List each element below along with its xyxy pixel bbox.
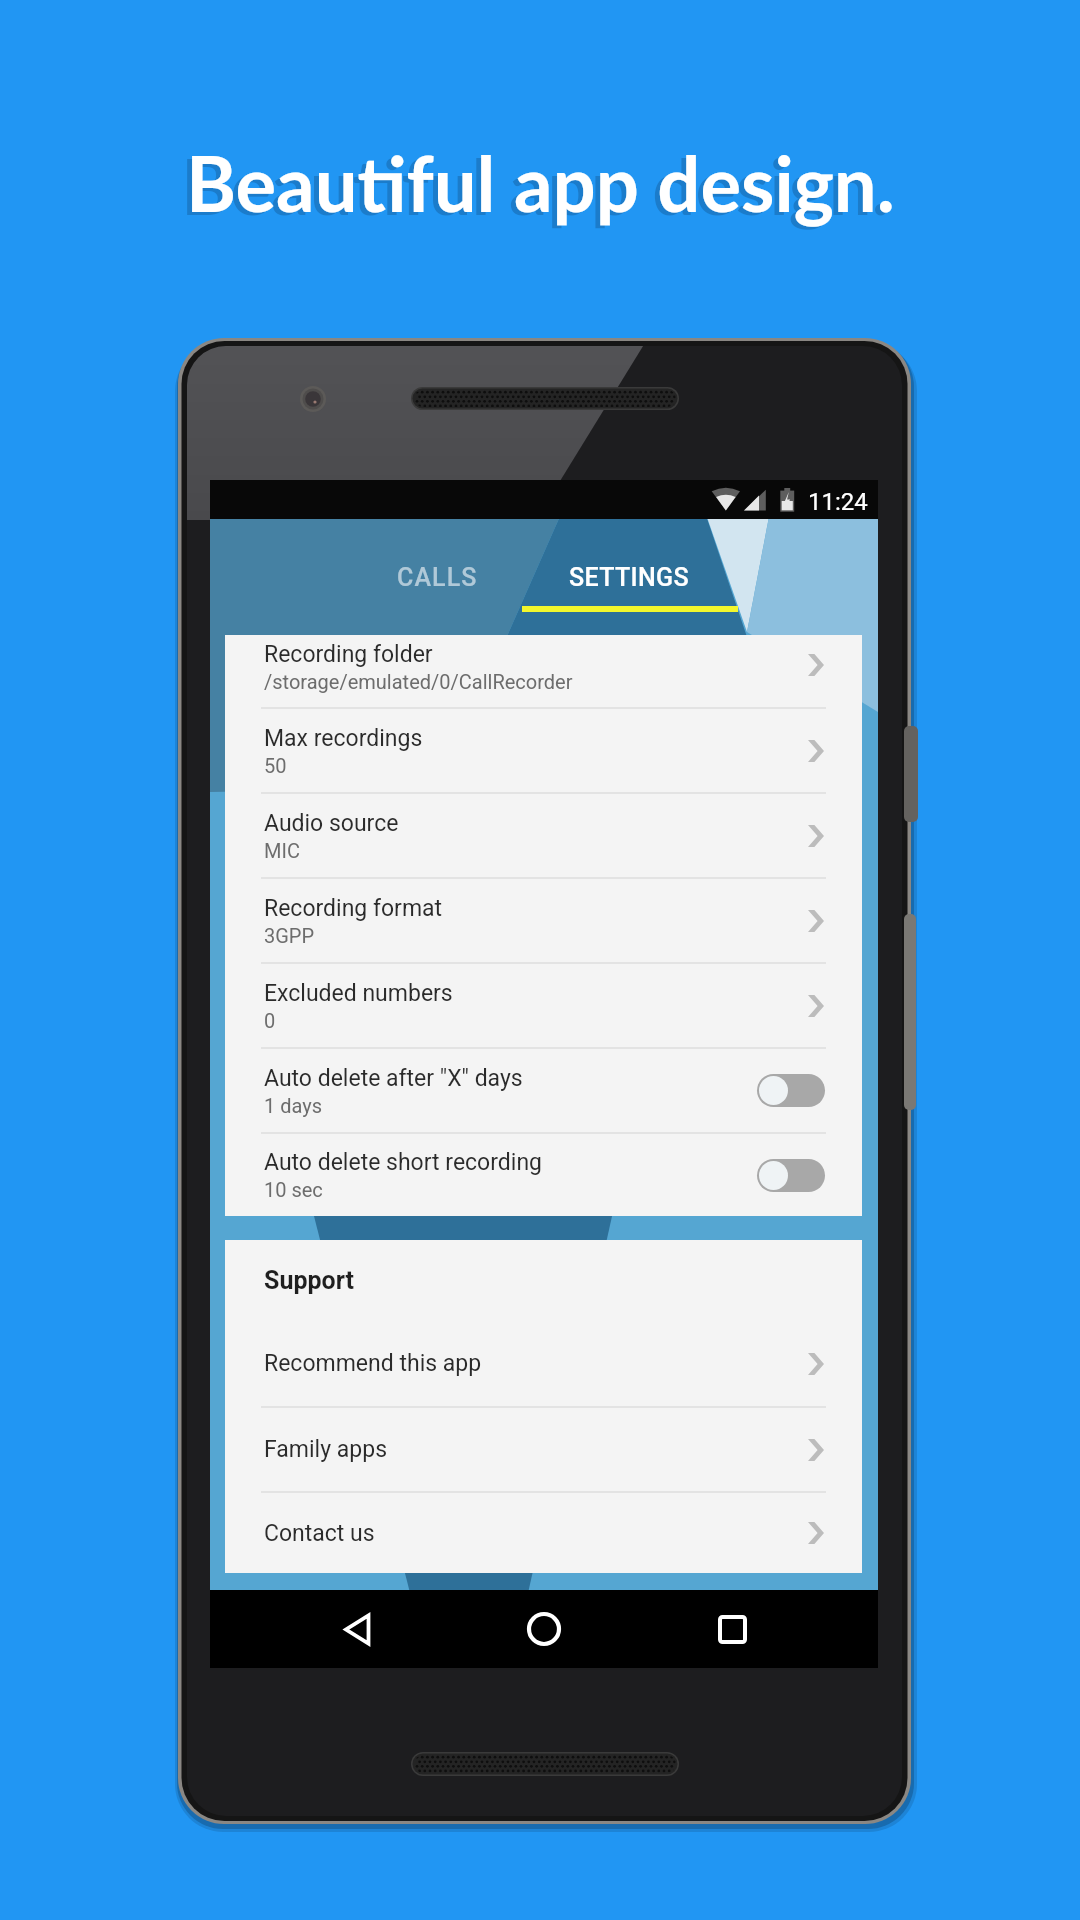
staticText: Beautiful app design. bbox=[186, 137, 895, 228]
other: Open bbox=[808, 825, 824, 847]
staticText: Recording folder bbox=[264, 641, 433, 668]
button[interactable]: SETTINGS bbox=[521, 519, 736, 635]
staticText: CALLS bbox=[397, 563, 478, 592]
staticText: Recording format bbox=[264, 895, 443, 922]
staticText: /storage/emulated/0/CallRecorder bbox=[264, 670, 573, 693]
button[interactable]: Recommend this app bbox=[225, 1321, 862, 1406]
staticText: 3GPP bbox=[264, 924, 315, 947]
staticText: Audio source bbox=[264, 810, 399, 837]
staticText: Max recordings bbox=[264, 725, 423, 752]
other: Open bbox=[808, 995, 824, 1017]
staticText: SETTINGS bbox=[569, 563, 689, 592]
staticText: Support bbox=[264, 1266, 354, 1295]
other: Open bbox=[808, 910, 824, 932]
staticText: 50 bbox=[264, 754, 287, 777]
button[interactable]: Contact us bbox=[225, 1493, 862, 1573]
staticText: 11:24 bbox=[808, 488, 868, 516]
other: Open bbox=[808, 740, 824, 762]
other: Open bbox=[808, 1522, 824, 1544]
button[interactable]: Toggle bbox=[757, 1074, 825, 1107]
button[interactable]: Audio source bbox=[225, 794, 862, 877]
staticText: MIC bbox=[264, 839, 300, 862]
staticText: Contact us bbox=[264, 1520, 808, 1547]
other: Open bbox=[808, 1353, 824, 1375]
other: Open bbox=[808, 654, 824, 676]
button[interactable]: Home bbox=[501, 1590, 587, 1668]
staticText: Beautiful app design. bbox=[181, 140, 890, 231]
button[interactable]: Recent apps bbox=[689, 1590, 775, 1668]
button[interactable]: Family apps bbox=[225, 1408, 862, 1491]
staticText: Excluded numbers bbox=[264, 980, 453, 1007]
staticText: Auto delete short recording bbox=[264, 1149, 542, 1176]
staticText: 1 days bbox=[264, 1094, 322, 1117]
button[interactable]: Auto delete short recording bbox=[225, 1134, 862, 1216]
button[interactable]: CALLS bbox=[330, 519, 545, 635]
staticText: Recommend this app bbox=[264, 1350, 808, 1377]
button[interactable]: Recording folder bbox=[225, 635, 862, 707]
button[interactable]: Max recordings bbox=[225, 709, 862, 792]
button[interactable]: Toggle bbox=[757, 1159, 825, 1192]
staticText: Auto delete after "X" days bbox=[264, 1065, 523, 1092]
staticText: 10 sec bbox=[264, 1178, 323, 1201]
staticText: 0 bbox=[264, 1009, 276, 1032]
button[interactable]: Back bbox=[315, 1590, 401, 1668]
staticText: Family apps bbox=[264, 1436, 808, 1463]
other: Open bbox=[808, 1439, 824, 1461]
button[interactable]: Recording format bbox=[225, 879, 862, 962]
button[interactable]: Auto delete after "X" days bbox=[225, 1049, 862, 1132]
button[interactable]: Excluded numbers bbox=[225, 964, 862, 1047]
